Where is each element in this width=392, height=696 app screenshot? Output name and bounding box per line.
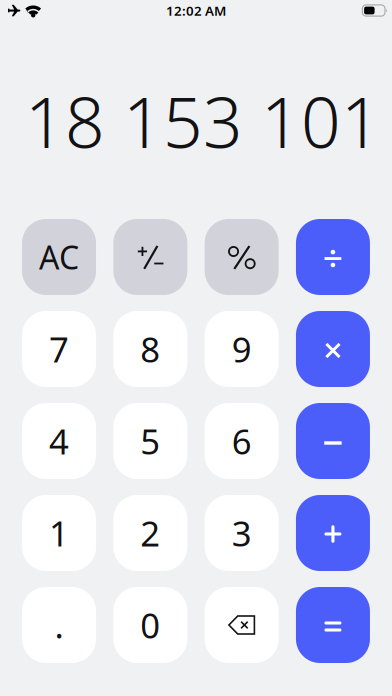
button[interactable]: 1 [22,495,96,571]
staticText: 2 [140,510,160,556]
staticText: 12:02 AM [166,2,226,19]
button[interactable]: 2 [113,495,187,571]
staticText: 18 153 101 [25,75,381,167]
staticText: 7 [49,326,69,372]
button[interactable]: 8 [113,311,187,387]
button[interactable]: Equals [296,587,370,663]
button[interactable]: 9 [205,311,279,387]
button[interactable]: 6 [205,403,279,479]
button[interactable]: Plus [296,495,370,571]
staticText: 6 [232,418,252,464]
button[interactable]: Divide [296,219,370,295]
button[interactable]: Delete [205,587,279,663]
button[interactable]: 7 [22,311,96,387]
staticText: 4 [49,418,69,464]
staticText: AC [39,236,79,278]
button[interactable]: Minus [296,403,370,479]
button[interactable]: 5 [113,403,187,479]
button[interactable]: . [22,587,96,663]
button[interactable]: 4 [22,403,96,479]
staticText: 9 [232,326,252,372]
button[interactable]: Percent [205,219,279,295]
staticText: 3 [232,510,252,556]
staticText: 1 [49,510,69,556]
button[interactable]: Plus minus [113,219,187,295]
staticText: 0 [140,602,160,648]
staticText: . [55,602,64,648]
staticText: 5 [140,418,160,464]
staticText: 8 [140,326,160,372]
button[interactable]: AC [22,219,96,295]
button[interactable]: 3 [205,495,279,571]
button[interactable]: Multiply [296,311,370,387]
button[interactable]: 0 [113,587,187,663]
